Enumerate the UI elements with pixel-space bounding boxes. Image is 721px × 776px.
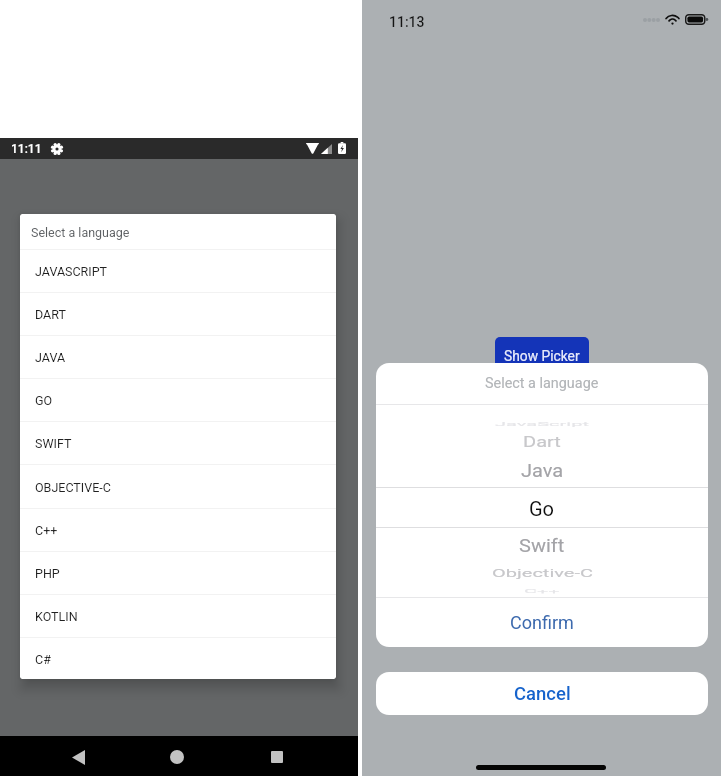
button[interactable]: OBJECTIVE-C	[20, 466, 336, 509]
staticText: 11:11	[11, 142, 42, 156]
staticText: Confirm	[510, 612, 574, 633]
staticText: 11:13	[389, 14, 425, 30]
staticText: JAVA	[35, 350, 66, 365]
button[interactable]: Confirm	[376, 598, 708, 647]
button[interactable]: GO	[20, 379, 336, 422]
staticText: KOTLIN	[35, 609, 78, 624]
staticText: SWIFT	[35, 436, 72, 451]
staticText: JavaScript	[495, 421, 589, 427]
staticText: Select a language	[31, 225, 130, 240]
button[interactable]: PHP	[20, 552, 336, 595]
staticText: Java	[521, 460, 564, 481]
button[interactable]: JAVA	[20, 336, 336, 379]
staticText: Show Picker	[504, 348, 580, 364]
button[interactable]: JAVASCRIPT	[20, 250, 336, 293]
staticText: Dart	[523, 433, 561, 450]
staticText: DART	[35, 307, 66, 322]
button[interactable]: Cancel	[376, 672, 708, 715]
staticText: Select a language	[485, 375, 599, 392]
staticText: Objective-C	[492, 566, 593, 579]
staticText: Swift	[519, 535, 565, 556]
button[interactable]: C#	[20, 638, 336, 679]
button[interactable]: Home	[165, 744, 189, 768]
button[interactable]: Recent apps	[265, 744, 289, 768]
staticText: JAVASCRIPT	[35, 264, 108, 279]
staticText: OBJECTIVE-C	[35, 480, 111, 495]
button[interactable]: KOTLIN	[20, 595, 336, 638]
staticText: GO	[35, 393, 53, 408]
button[interactable]: Show Picker	[495, 337, 589, 374]
button[interactable]: SWIFT	[20, 422, 336, 465]
staticText: Go	[529, 497, 555, 520]
button[interactable]: C++	[20, 509, 336, 552]
staticText: C++	[524, 588, 560, 594]
staticText: C++	[35, 523, 58, 538]
staticText: PHP	[35, 566, 60, 581]
button[interactable]: Back	[66, 744, 90, 768]
button[interactable]: DART	[20, 293, 336, 336]
staticText: Cancel	[514, 683, 571, 705]
staticText: C#	[35, 652, 51, 667]
